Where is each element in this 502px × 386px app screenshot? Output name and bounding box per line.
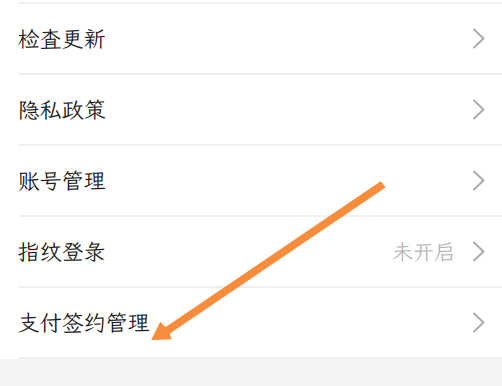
button[interactable]: 检查更新 bbox=[0, 4, 502, 73]
button[interactable]: 支付签约管理 bbox=[0, 288, 502, 357]
staticText: 未开启 bbox=[392, 237, 455, 265]
staticText: 检查更新 bbox=[17, 24, 105, 53]
staticText: 指纹登录 bbox=[17, 237, 105, 266]
staticText: 隐私政策 bbox=[17, 95, 105, 124]
staticText: 账号管理 bbox=[17, 166, 105, 195]
button[interactable]: 隐私政策 bbox=[0, 75, 502, 144]
button[interactable]: 指纹登录 bbox=[0, 217, 502, 286]
staticText: 支付签约管理 bbox=[17, 308, 149, 337]
button[interactable]: 账号管理 bbox=[0, 146, 502, 215]
